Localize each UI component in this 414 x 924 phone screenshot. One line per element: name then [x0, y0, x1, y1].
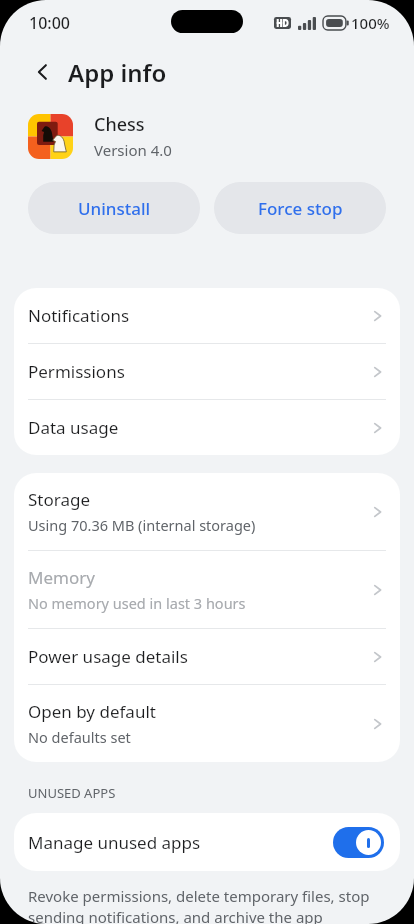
staticText: Power usage details [28, 645, 188, 668]
button[interactable]: Uninstall [28, 182, 200, 234]
button[interactable]: Manage unused apps [14, 813, 400, 871]
staticText: Using 70.36 MB (internal storage) [28, 515, 256, 535]
button[interactable]: Memory [14, 551, 400, 628]
button[interactable]: Power usage details [14, 629, 400, 684]
staticText: UNUSED APPS [28, 784, 116, 802]
staticText: No defaults set [28, 727, 131, 747]
staticText: Open by default [28, 700, 156, 723]
button[interactable]: Open by default [14, 685, 400, 762]
staticText: Chess [94, 112, 145, 137]
button[interactable]: Storage [14, 473, 400, 550]
staticText: Notifications [28, 304, 130, 327]
button[interactable]: Notifications [14, 288, 400, 343]
staticText: 100% [351, 13, 390, 33]
button[interactable]: Data usage [14, 400, 400, 455]
staticText: Storage [28, 488, 91, 511]
staticText: Uninstall [78, 197, 151, 220]
button[interactable]: Permissions [14, 344, 400, 399]
staticText: Data usage [28, 416, 119, 439]
staticText: Version 4.0 [94, 140, 172, 160]
staticText: Revoke permissions, delete temporary fil… [28, 886, 384, 924]
staticText: Force stop [258, 197, 343, 220]
staticText: Memory [28, 566, 95, 589]
staticText: Manage unused apps [28, 831, 333, 854]
button[interactable]: Force stop [214, 182, 386, 234]
staticText: No memory used in last 3 hours [28, 593, 246, 613]
button[interactable]: Back [26, 55, 60, 89]
staticText: App info [68, 56, 167, 89]
staticText: Permissions [28, 360, 125, 383]
staticText: 10:00 [29, 12, 70, 34]
button[interactable]: Manage unused apps toggle, on [333, 827, 384, 858]
